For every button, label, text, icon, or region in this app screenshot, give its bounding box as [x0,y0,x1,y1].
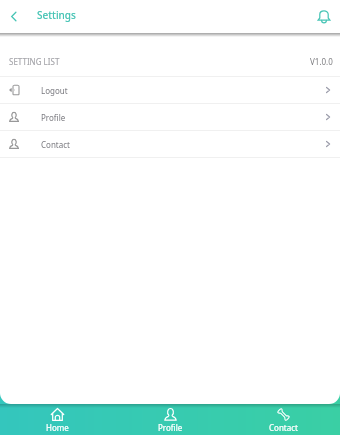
staticText: Contact [269,422,298,433]
staticText: Settings [37,8,76,22]
button[interactable]: Logout [0,77,340,103]
staticText: Home [46,422,69,433]
button[interactable]: Back [6,9,21,24]
button[interactable]: Notifications [317,9,331,23]
button[interactable]: Home [0,404,114,435]
staticText: Profile [41,112,66,123]
staticText: Profile [158,422,183,433]
button[interactable]: Profile [0,104,340,130]
button[interactable]: Contact [227,404,340,435]
staticText: V1.0.0 [310,56,333,67]
staticText: SETTING LIST [9,56,60,67]
staticText: Logout [41,85,68,96]
button[interactable]: Contact [0,131,340,157]
button[interactable]: Profile [114,404,227,435]
staticText: Contact [41,139,70,150]
